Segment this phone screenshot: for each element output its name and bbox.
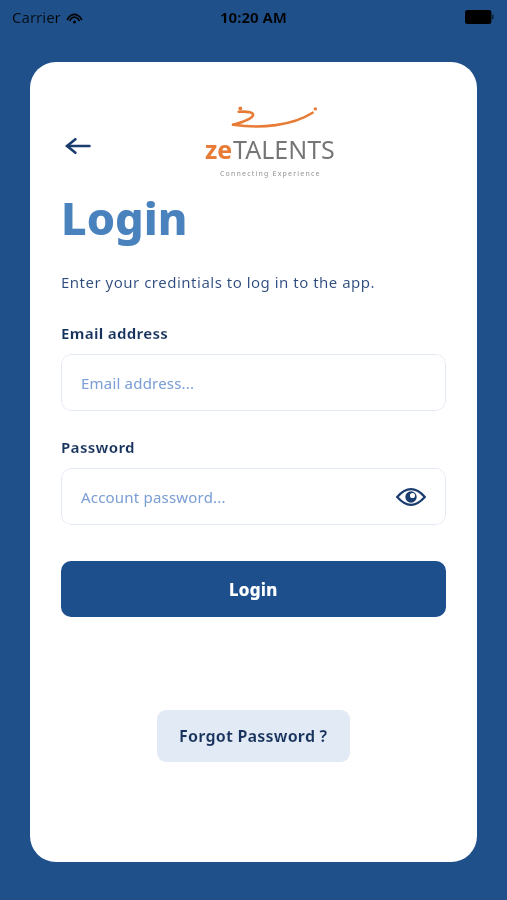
staticText: 10:20 AM — [220, 7, 287, 27]
button[interactable]: Email address... — [61, 354, 446, 411]
staticText: Email address — [61, 323, 169, 343]
button[interactable]: Forgot Password ? — [157, 710, 350, 762]
button[interactable]: Show password — [394, 480, 428, 514]
staticText: Login — [61, 187, 188, 248]
staticText: Enter your credintials to log in to the … — [61, 272, 376, 292]
staticText: Carrier — [12, 7, 61, 27]
staticText: Login — [229, 578, 278, 601]
button[interactable]: Account password... — [61, 468, 446, 525]
staticText: Password — [61, 437, 135, 457]
button[interactable]: Back — [56, 124, 100, 168]
staticText: Account password... — [81, 487, 226, 507]
staticText: TALENTS — [233, 132, 335, 166]
button[interactable]: Login — [61, 561, 446, 617]
staticText: Forgot Password ? — [179, 725, 328, 747]
staticText: ze — [205, 132, 233, 166]
staticText: Email address... — [81, 373, 195, 393]
staticText: Connecting Experience — [220, 169, 321, 178]
